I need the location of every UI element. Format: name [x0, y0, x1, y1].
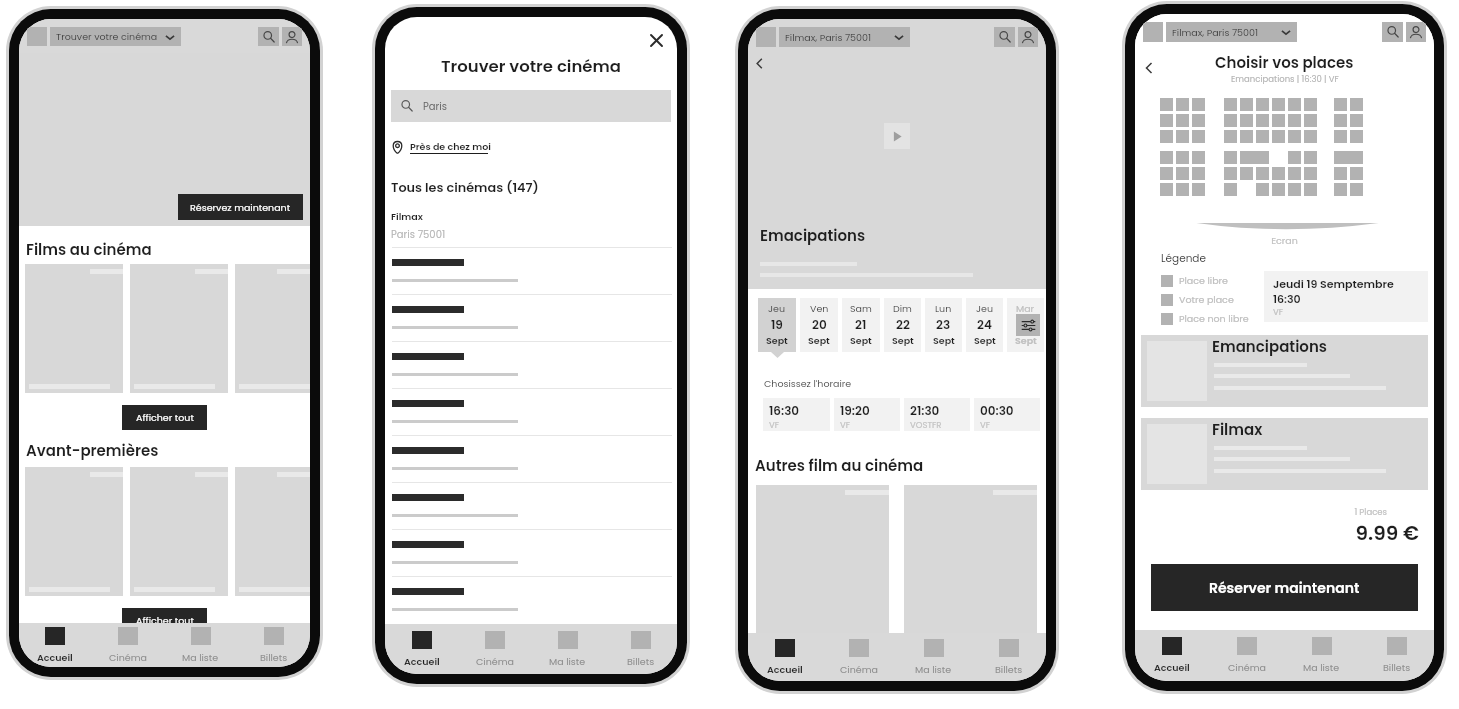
button[interactable]: Back: [1140, 59, 1158, 77]
button[interactable]: [385, 482, 677, 529]
button[interactable]: [25, 467, 123, 596]
button[interactable]: Play trailer: [884, 123, 910, 149]
button[interactable]: Accueil: [1135, 630, 1209, 681]
button[interactable]: Emancipations: [1141, 335, 1428, 407]
button[interactable]: Search: [1382, 22, 1403, 42]
button[interactable]: Jeu: [758, 298, 796, 352]
button[interactable]: [130, 467, 228, 596]
button[interactable]: [130, 264, 228, 393]
button[interactable]: Cinéma: [1209, 630, 1284, 681]
button[interactable]: Cinéma: [91, 623, 164, 667]
button[interactable]: Paris: [391, 90, 671, 122]
button[interactable]: Ma liste: [1284, 630, 1359, 681]
button[interactable]: Accueil: [385, 624, 458, 674]
button[interactable]: [385, 294, 677, 341]
button[interactable]: [756, 485, 889, 650]
button[interactable]: [904, 485, 1037, 650]
button[interactable]: Afficher tout: [122, 405, 207, 430]
button[interactable]: Jeu: [966, 298, 1003, 352]
button[interactable]: [385, 576, 677, 623]
button[interactable]: Sam: [842, 298, 880, 352]
button[interactable]: Search: [258, 27, 279, 46]
button[interactable]: Ma liste: [531, 624, 604, 674]
button[interactable]: [235, 264, 310, 393]
button[interactable]: Filmax, Paris 75001: [1166, 22, 1297, 42]
button[interactable]: Filter: [1016, 314, 1040, 336]
button[interactable]: Afficher tout: [122, 608, 207, 633]
button[interactable]: Billets: [604, 624, 677, 674]
button[interactable]: Réservez maintenant: [178, 194, 303, 220]
button[interactable]: [235, 467, 310, 596]
button[interactable]: Search: [994, 27, 1015, 47]
button[interactable]: Cinéma: [458, 624, 531, 674]
button[interactable]: [385, 529, 677, 576]
button[interactable]: Close: [647, 31, 665, 49]
button[interactable]: Billets: [1359, 630, 1434, 681]
button[interactable]: Profile: [1018, 27, 1038, 47]
button[interactable]: Filmax, Paris 75001: [779, 27, 910, 47]
button[interactable]: Réserver maintenant: [1151, 564, 1418, 611]
button[interactable]: Ma liste: [896, 633, 971, 681]
button[interactable]: [385, 341, 677, 388]
button[interactable]: 21:30: [904, 398, 970, 431]
button[interactable]: [385, 247, 677, 294]
button[interactable]: 00:30: [974, 398, 1040, 431]
button[interactable]: Profile: [282, 27, 302, 46]
button[interactable]: Place non libre: [1161, 312, 1249, 325]
button[interactable]: Billets: [237, 623, 310, 667]
button[interactable]: Votre place: [1161, 293, 1234, 306]
button[interactable]: Profile: [1406, 22, 1426, 42]
button[interactable]: Mar: [1007, 298, 1044, 352]
button[interactable]: Billets: [971, 633, 1046, 681]
button[interactable]: [385, 388, 677, 435]
button[interactable]: Filmax: [1141, 418, 1428, 490]
